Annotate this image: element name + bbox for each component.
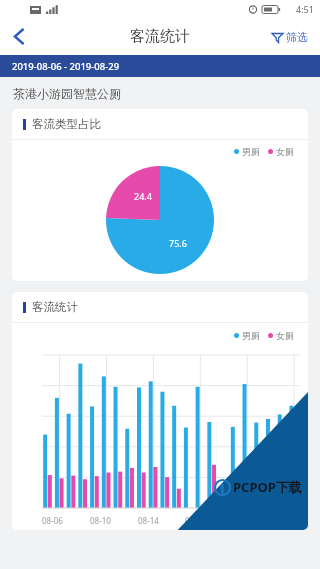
staticText: 2019-08-06 - 2019-08-29 xyxy=(12,60,120,73)
staticText: 客流统计 xyxy=(130,27,190,46)
staticText: 客流类型占比 xyxy=(32,117,101,131)
button[interactable]: 客流统计 xyxy=(12,292,308,530)
staticText: 女厕 xyxy=(276,330,294,341)
staticText: 男厕 xyxy=(242,146,260,157)
staticText: 男厕 xyxy=(242,330,260,341)
button[interactable]: 客流类型占比 xyxy=(12,109,308,281)
staticText: 客流统计 xyxy=(32,300,78,314)
staticText: 茶港小游园智慧公厕 xyxy=(13,86,121,101)
staticText: 4:51 xyxy=(296,3,314,15)
staticText: 女厕 xyxy=(276,146,294,157)
staticText: 24.4 xyxy=(134,190,152,202)
staticText: 08-14 xyxy=(138,515,159,526)
staticText: 筛选 xyxy=(286,30,308,44)
staticText: PCPOP下载 xyxy=(233,478,302,496)
staticText: 08-10 xyxy=(90,515,111,526)
staticText: 08-18 xyxy=(185,515,206,526)
button[interactable]: 筛选 xyxy=(268,25,311,49)
staticText: 75.6 xyxy=(169,237,187,249)
staticText: 08-06 xyxy=(42,515,63,526)
button[interactable]: Back xyxy=(0,18,40,55)
